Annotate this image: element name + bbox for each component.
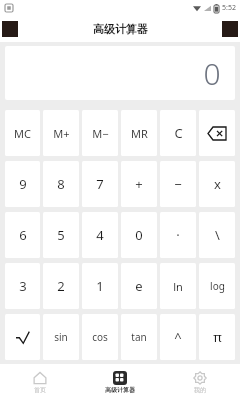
button[interactable]	[5, 314, 40, 360]
staticText: π	[213, 328, 222, 346]
staticText: 3	[19, 277, 27, 295]
button[interactable]: \	[199, 212, 235, 258]
button[interactable]: 8	[43, 161, 79, 207]
staticText: tan	[131, 330, 147, 344]
staticText: 0	[135, 226, 143, 244]
button[interactable]: ln	[160, 263, 196, 309]
staticText: MR	[131, 126, 148, 141]
staticText: −	[174, 175, 182, 193]
staticText: 1	[96, 277, 104, 295]
staticText: 7	[96, 175, 104, 193]
staticText: e	[135, 277, 143, 295]
button[interactable]: 6	[5, 212, 40, 258]
staticText: 9	[19, 175, 27, 193]
button[interactable]: 7	[82, 161, 118, 207]
staticText: ln	[173, 279, 183, 294]
staticText: 5	[57, 226, 65, 244]
staticText: +	[135, 175, 143, 193]
staticText: 0	[203, 53, 221, 94]
button[interactable]: Backspace	[199, 110, 235, 156]
button[interactable]: 1	[82, 263, 118, 309]
button[interactable]: 高级计算器	[80, 364, 160, 400]
staticText: 我的	[194, 386, 206, 394]
staticText: 4	[96, 226, 104, 244]
staticText: \	[215, 226, 220, 244]
staticText: ·	[176, 226, 180, 244]
button[interactable]: 我的	[160, 364, 240, 400]
button[interactable]: log	[199, 263, 235, 309]
button[interactable]: tan	[121, 314, 157, 360]
button[interactable]: 5	[43, 212, 79, 258]
staticText: 2	[57, 277, 65, 295]
button[interactable]: +	[121, 161, 157, 207]
button[interactable]: C	[160, 110, 196, 156]
button[interactable]: 0	[5, 46, 235, 100]
button[interactable]: x	[199, 161, 235, 207]
button[interactable]: 2	[43, 263, 79, 309]
staticText: x	[214, 175, 221, 193]
staticText: 高级计算器	[105, 386, 135, 394]
staticText: log	[210, 279, 225, 293]
button[interactable]: 首页	[0, 364, 80, 400]
staticText: 高级计算器	[93, 22, 148, 36]
button[interactable]: 0	[121, 212, 157, 258]
button[interactable]: M+	[43, 110, 79, 156]
button[interactable]: cos	[82, 314, 118, 360]
staticText: 8	[57, 175, 65, 193]
button[interactable]: 3	[5, 263, 40, 309]
button[interactable]: 9	[5, 161, 40, 207]
staticText: sin	[54, 330, 68, 344]
button[interactable]: π	[199, 314, 235, 360]
button[interactable]: −	[160, 161, 196, 207]
button[interactable]: ^	[160, 314, 196, 360]
staticText: cos	[92, 330, 108, 344]
button[interactable]: 4	[82, 212, 118, 258]
button[interactable]: MR	[121, 110, 157, 156]
button[interactable]: MC	[5, 110, 40, 156]
staticText: MC	[14, 126, 31, 141]
staticText: 5:52	[222, 3, 236, 13]
staticText: M−	[92, 126, 109, 141]
button[interactable]: sin	[43, 314, 79, 360]
button[interactable]: M−	[82, 110, 118, 156]
staticText: 首页	[34, 386, 46, 394]
staticText: M+	[53, 126, 70, 141]
button[interactable]: e	[121, 263, 157, 309]
staticText: C	[174, 124, 183, 142]
button[interactable]: ·	[160, 212, 196, 258]
staticText: 6	[19, 226, 27, 244]
staticText: ^	[174, 328, 182, 346]
